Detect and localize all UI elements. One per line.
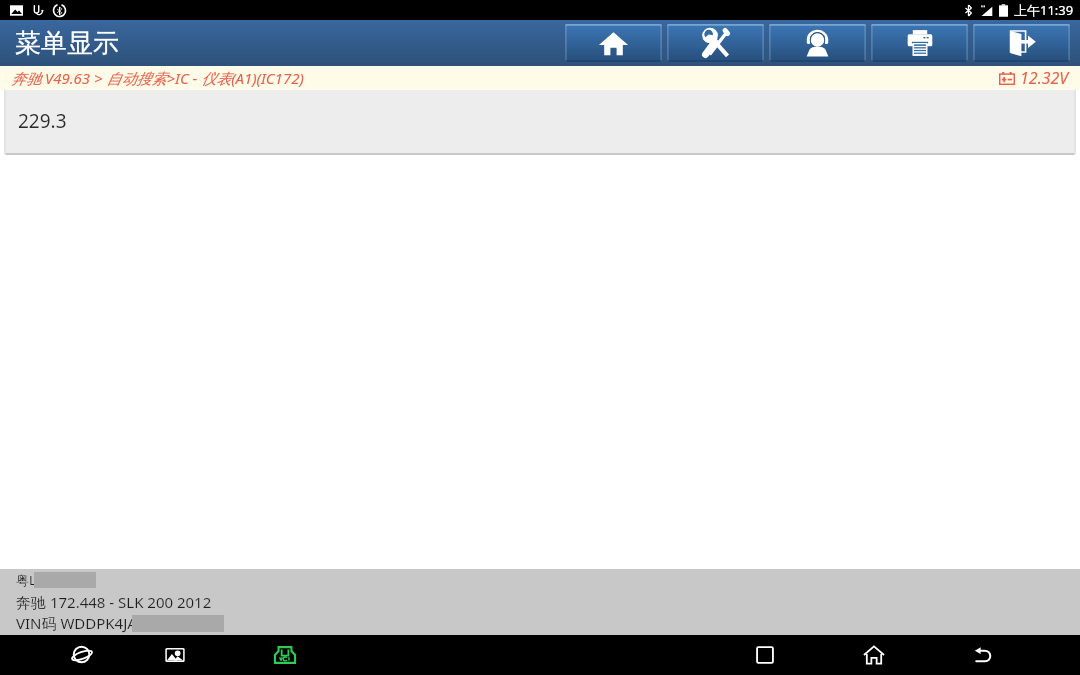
staticText: 粤L: [16, 571, 36, 589]
button[interactable]: Back: [953, 635, 1013, 675]
button[interactable]: Home: [565, 24, 662, 62]
button[interactable]: Remote support: [769, 24, 866, 62]
button[interactable]: Print: [871, 24, 968, 62]
button[interactable]: 奔驰 V49.63 > 自动搜索>IC - 仪表(A1)(IC172): [0, 66, 304, 90]
button[interactable]: Recents: [735, 635, 795, 675]
button[interactable]: Diagnostics: [667, 24, 764, 62]
staticText: 奔驰 172.448 - SLK 200 2012: [16, 592, 212, 612]
staticText: 菜单显示: [15, 27, 119, 60]
staticText: 奔驰 V49.63 > 自动搜索>IC - 仪表(A1)(IC172): [11, 68, 304, 88]
staticText: VIN码 WDDPK4JA6: [16, 613, 146, 633]
button[interactable]: Home: [844, 635, 904, 675]
button[interactable]: Gallery: [145, 635, 205, 675]
staticText: 上午11:39: [1014, 1, 1074, 19]
button[interactable]: Browser: [52, 635, 112, 675]
staticText: 229.3: [18, 108, 67, 134]
button[interactable]: 229.3: [4, 90, 1076, 155]
button[interactable]: VCI connection: [255, 635, 315, 675]
staticText: 12.32V: [1020, 67, 1069, 89]
button[interactable]: Exit: [973, 24, 1070, 62]
